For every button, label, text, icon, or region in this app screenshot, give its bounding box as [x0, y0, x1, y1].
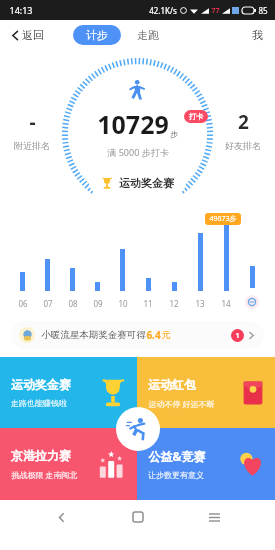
staticText: 满 5000 步打卡: [107, 146, 169, 158]
staticText: 85: [258, 5, 268, 16]
staticText: 6.4: [146, 328, 161, 342]
button[interactable]: 计步: [73, 25, 121, 45]
button[interactable]: 开始跑步: [116, 407, 160, 451]
staticText: 运动红包: [148, 377, 196, 392]
staticText: -: [29, 109, 36, 135]
staticText: 公益&竞赛: [148, 448, 206, 464]
button[interactable]: 走跑: [131, 24, 165, 46]
button[interactable]: 我: [247, 24, 268, 46]
staticText: 小暖流星本期奖金赛可得: [41, 329, 146, 341]
staticText: 步: [170, 129, 178, 139]
staticText: 计步: [86, 28, 108, 42]
staticText: 09: [93, 298, 103, 309]
staticText: 好友排名: [225, 140, 261, 151]
staticText: 附近排名: [14, 140, 50, 151]
button[interactable]: 京港拉力赛: [0, 428, 137, 500]
staticText: 49673步: [209, 214, 237, 224]
button[interactable]: 12: [161, 282, 187, 309]
button[interactable]: 14: [213, 219, 239, 309]
button[interactable]: 13: [187, 233, 213, 309]
staticText: 14:13: [9, 4, 33, 16]
button[interactable]: 运动红包: [137, 357, 275, 428]
button[interactable]: 公益&竞赛: [137, 428, 275, 500]
staticText: 77: [211, 6, 220, 16]
button[interactable]: Back: [45, 501, 77, 533]
staticText: 11: [143, 298, 153, 309]
button[interactable]: 返回: [7, 24, 47, 46]
button[interactable]: -: [14, 109, 50, 151]
staticText: 走路也能赚钱啦: [11, 398, 67, 408]
staticText: 08: [68, 298, 78, 309]
button[interactable]: 06: [10, 272, 35, 309]
staticText: 运动奖金赛: [119, 176, 174, 190]
staticText: 13: [195, 298, 205, 309]
staticText: 10729: [97, 107, 169, 141]
staticText: 打卡: [189, 112, 203, 121]
staticText: 12: [169, 298, 179, 309]
button[interactable]: 打卡: [184, 110, 208, 123]
staticText: 2: [238, 109, 249, 135]
staticText: 07: [43, 298, 53, 309]
staticText: 挑战极限 走南闯北: [11, 469, 78, 480]
staticText: 14: [221, 298, 231, 309]
button[interactable]: 09: [85, 282, 110, 309]
button[interactable]: Home: [122, 501, 154, 533]
staticText: 让步数更有意义: [148, 470, 204, 480]
staticText: 走跑: [137, 28, 159, 42]
button[interactable]: 10: [110, 249, 135, 309]
staticText: 运动不停 好运不断: [148, 398, 215, 409]
button[interactable]: 2: [225, 109, 261, 151]
staticText: 10: [118, 298, 128, 309]
button[interactable]: 运动奖金赛: [0, 357, 137, 428]
button[interactable]: 08: [60, 268, 85, 309]
button[interactable]: Recents: [198, 501, 230, 533]
button[interactable]: 运动奖金赛: [89, 172, 186, 194]
button[interactable]: [239, 266, 265, 309]
staticText: 元: [161, 329, 171, 341]
button[interactable]: 11: [135, 278, 161, 309]
staticText: 返回: [22, 28, 44, 42]
staticText: 1: [235, 331, 240, 341]
staticText: 我: [252, 28, 263, 42]
button[interactable]: 小暖流星本期奖金赛可得: [11, 321, 264, 349]
staticText: 42.1K/s: [149, 5, 177, 16]
button[interactable]: 07: [35, 259, 60, 309]
staticText: 运动奖金赛: [11, 377, 71, 392]
staticText: 06: [18, 298, 28, 309]
staticText: 京港拉力赛: [11, 448, 71, 463]
